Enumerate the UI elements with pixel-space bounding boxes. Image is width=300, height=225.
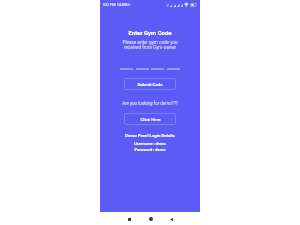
button[interactable]: Recent apps (124, 214, 134, 224)
staticText: Demo Panel Login Details (100, 133, 200, 138)
staticText: Submit Code (137, 82, 163, 87)
button[interactable]: Back (166, 214, 176, 224)
staticText: Enter Gym Code (100, 29, 200, 36)
button[interactable]: Click Here (124, 113, 176, 125)
button[interactable]: Submit Code (124, 78, 176, 90)
staticText: Click Here (140, 117, 161, 122)
staticText: received from Gym owner (100, 45, 200, 50)
staticText: 5:32 PM | 14.4KB/s (103, 3, 131, 7)
staticText: Password : demo (100, 147, 200, 152)
staticText: Are you looking for demo??? (100, 101, 200, 106)
staticText: Please enter gym code you (100, 40, 200, 45)
staticText: Username : demo (100, 141, 200, 146)
button[interactable]: Home (146, 214, 156, 224)
